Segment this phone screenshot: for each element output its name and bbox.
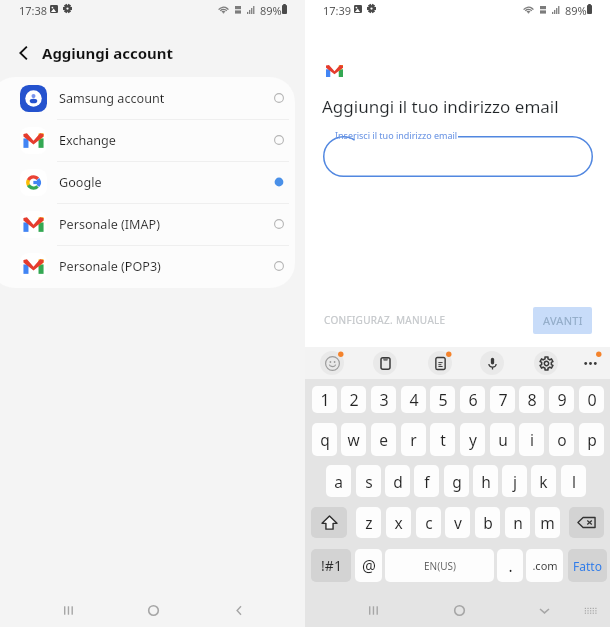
button[interactable]: h (473, 465, 498, 497)
button[interactable]: 6 (460, 386, 485, 413)
staticText: 3 (379, 389, 389, 411)
button[interactable]: s (356, 465, 381, 497)
staticText: b (483, 512, 493, 533)
button[interactable]: More options (576, 349, 604, 377)
button[interactable]: y (460, 423, 485, 456)
staticText: t (440, 429, 446, 450)
button[interactable]: f (414, 465, 439, 497)
button[interactable]: Back (224, 595, 254, 625)
staticText: j (513, 471, 517, 492)
button[interactable]: Backspace (569, 507, 604, 538)
button[interactable]: Back (11, 40, 37, 66)
button[interactable]: Voice input (478, 349, 506, 377)
staticText: 17:38 (19, 3, 48, 18)
button[interactable]: m (535, 507, 560, 538)
staticText: . (508, 555, 513, 576)
button[interactable]: p (579, 423, 604, 456)
staticText: c (425, 512, 433, 533)
button[interactable]: @ (355, 549, 382, 582)
button[interactable]: u (490, 423, 515, 456)
button[interactable]: AVANTI (533, 307, 592, 334)
button[interactable]: !#1 (311, 549, 351, 582)
button[interactable]: z (356, 507, 381, 538)
button[interactable]: Keyboard settings (532, 349, 560, 377)
button[interactable]: Switch keyboard (575, 595, 605, 625)
staticText: 7 (498, 389, 508, 411)
staticText: u (498, 429, 508, 450)
button[interactable]: Recents (53, 595, 83, 625)
button[interactable]: j (502, 465, 527, 497)
staticText: Fatto (573, 558, 602, 574)
staticText: s (365, 471, 373, 492)
button[interactable]: Exchange (0, 119, 295, 161)
button[interactable]: d (385, 465, 410, 497)
button[interactable]: Home (138, 595, 168, 625)
button[interactable]: EN(US) (385, 549, 494, 582)
staticText: Aggiungi account (42, 43, 174, 63)
button[interactable]: Text extraction (426, 349, 454, 377)
staticText: 5 (438, 389, 448, 411)
staticText: e (379, 429, 388, 450)
staticText: @ (362, 555, 376, 576)
staticText: 0 (587, 389, 597, 411)
button[interactable]: Home (444, 595, 474, 625)
staticText: i (530, 429, 534, 450)
button[interactable]: Shift (311, 507, 347, 538)
staticText: 6 (468, 389, 478, 411)
button[interactable]: b (475, 507, 500, 538)
button[interactable]: Samsung account (0, 77, 295, 119)
button[interactable]: 2 (341, 386, 366, 413)
button[interactable]: 1 (312, 386, 337, 413)
button[interactable]: t (430, 423, 455, 456)
staticText: Personale (IMAP) (59, 216, 160, 233)
staticText: l (572, 471, 576, 492)
button[interactable]: g (444, 465, 469, 497)
button[interactable]: Clipboard (371, 349, 399, 377)
staticText: p (587, 429, 597, 450)
staticText: 4 (409, 389, 419, 411)
staticText: w (347, 429, 360, 450)
staticText: AVANTI (543, 313, 583, 328)
staticText: EN(US) (424, 559, 456, 573)
button[interactable]: a (326, 465, 351, 497)
staticText: z (365, 512, 373, 533)
button[interactable]: q (312, 423, 337, 456)
button[interactable]: c (416, 507, 441, 538)
staticText: 89% (565, 3, 587, 18)
button[interactable]: Personale (IMAP) (0, 203, 295, 245)
button[interactable]: 5 (430, 386, 455, 413)
button[interactable]: . (497, 549, 523, 582)
button[interactable]: i (519, 423, 544, 456)
button[interactable]: Emoji (318, 349, 346, 377)
staticText: q (320, 429, 330, 450)
button[interactable]: 0 (579, 386, 604, 413)
staticText: 2 (349, 389, 359, 411)
button[interactable]: Fatto (568, 549, 607, 582)
button[interactable]: e (371, 423, 396, 456)
button[interactable]: n (505, 507, 530, 538)
button[interactable]: CONFIGURAZ. MANUALE (324, 313, 446, 327)
button[interactable]: .com (526, 549, 563, 582)
staticText: .com (532, 558, 558, 573)
staticText: 8 (527, 389, 537, 411)
button[interactable]: l (561, 465, 586, 497)
button[interactable]: o (549, 423, 574, 456)
button[interactable]: r (401, 423, 426, 456)
staticText: n (513, 512, 523, 533)
staticText: x (394, 512, 403, 533)
button[interactable]: w (341, 423, 366, 456)
button[interactable]: k (531, 465, 556, 497)
button[interactable]: x (386, 507, 411, 538)
button[interactable]: Recents (358, 595, 388, 625)
button[interactable]: Google (0, 161, 295, 203)
button[interactable]: v (445, 507, 470, 538)
staticText: Personale (POP3) (59, 258, 161, 275)
button[interactable]: 4 (401, 386, 426, 413)
button[interactable]: 9 (549, 386, 574, 413)
button[interactable]: 3 (371, 386, 396, 413)
button[interactable]: Personale (POP3) (0, 245, 295, 287)
button[interactable]: 7 (490, 386, 515, 413)
button[interactable]: 8 (519, 386, 544, 413)
staticText: 17:39 (323, 3, 352, 18)
button[interactable]: Hide keyboard (529, 595, 559, 625)
